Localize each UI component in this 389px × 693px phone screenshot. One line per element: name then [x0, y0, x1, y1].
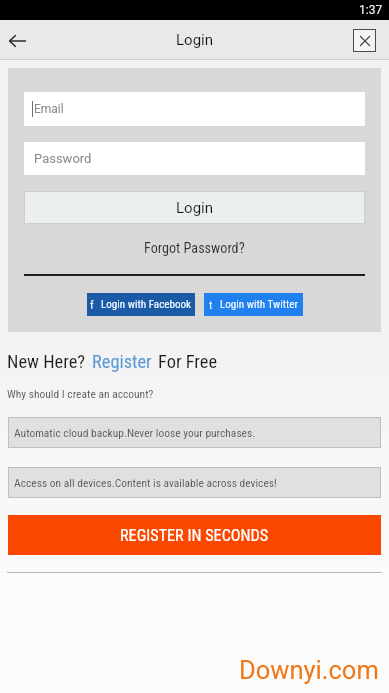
button[interactable]: Back — [0, 21, 34, 60]
button[interactable]: Password — [24, 142, 365, 175]
button[interactable]: Login — [24, 191, 365, 224]
staticText: Login with Twitter — [220, 298, 298, 311]
button[interactable]: f — [87, 293, 195, 316]
staticText: f — [90, 298, 94, 311]
staticText: Access on all devices.Content is availab… — [14, 476, 277, 489]
staticText: Email — [34, 102, 64, 116]
staticText: For Free — [158, 351, 217, 373]
staticText: REGISTER IN SECONDS — [120, 526, 269, 545]
staticText: Downyi.com — [239, 655, 379, 685]
staticText: Login — [176, 199, 213, 217]
button[interactable]: Email — [24, 92, 365, 126]
button[interactable]: Close — [353, 29, 376, 52]
staticText: New Here? — [7, 351, 86, 373]
staticText: Password — [34, 151, 92, 166]
button[interactable]: REGISTER IN SECONDS — [8, 515, 381, 555]
staticText: Forgot Password? — [144, 240, 245, 257]
staticText: 1:37 — [359, 3, 383, 17]
staticText: Automatic cloud backup.Never loose your … — [14, 426, 256, 439]
button[interactable]: t — [204, 293, 303, 316]
staticText: Why should I create an account? — [7, 387, 154, 400]
button[interactable]: Forgot Password? — [24, 236, 365, 260]
staticText: Login with Facebook — [101, 298, 192, 311]
staticText: t — [209, 298, 213, 311]
staticText: Login — [176, 31, 213, 49]
button[interactable]: Register — [92, 351, 152, 373]
